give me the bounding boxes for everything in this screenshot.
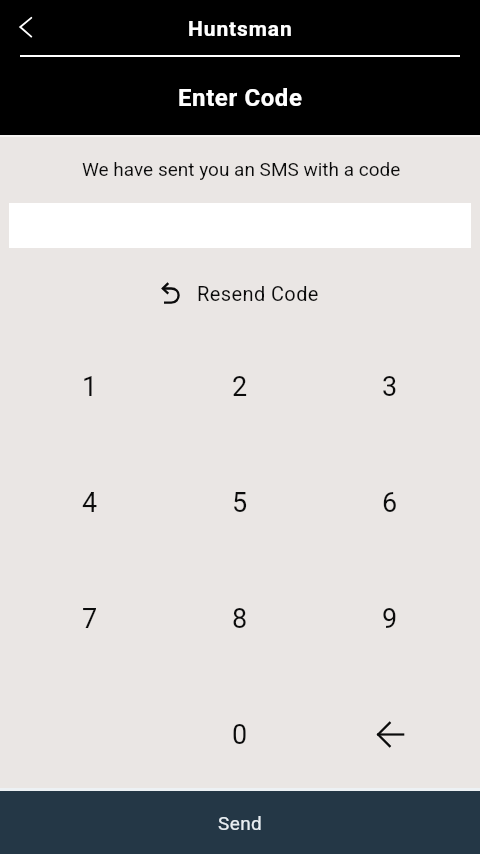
button[interactable]: 8 [165, 561, 315, 677]
button[interactable]: 7 [15, 561, 165, 677]
button[interactable]: 9 [315, 561, 465, 677]
button[interactable]: Send [0, 791, 480, 854]
staticText: 2 [232, 371, 248, 403]
button[interactable]: Backspace [315, 677, 465, 793]
staticText: 1 [82, 371, 98, 403]
staticText: 7 [82, 603, 98, 635]
staticText: Enter Code [178, 84, 303, 112]
staticText: Send [218, 812, 263, 834]
button[interactable]: 6 [315, 445, 465, 561]
staticText: 0 [232, 719, 248, 751]
button[interactable]: 0 [165, 677, 315, 793]
staticText: Huntsman [188, 17, 293, 42]
button[interactable]: Resend Code [157, 277, 323, 309]
staticText: 4 [82, 487, 98, 519]
staticText: 9 [382, 603, 398, 635]
button[interactable]: 1 [15, 329, 165, 445]
staticText: 5 [232, 487, 248, 519]
button[interactable]: 3 [315, 329, 465, 445]
button[interactable]: 4 [15, 445, 165, 561]
staticText: 6 [382, 487, 398, 519]
staticText: 8 [232, 603, 248, 635]
staticText: Resend Code [197, 282, 319, 305]
staticText: We have sent you an SMS with a code [82, 158, 401, 180]
staticText: 3 [382, 371, 398, 403]
button[interactable]: Back [6, 7, 46, 47]
button[interactable]: 5 [165, 445, 315, 561]
button[interactable]: 2 [165, 329, 315, 445]
